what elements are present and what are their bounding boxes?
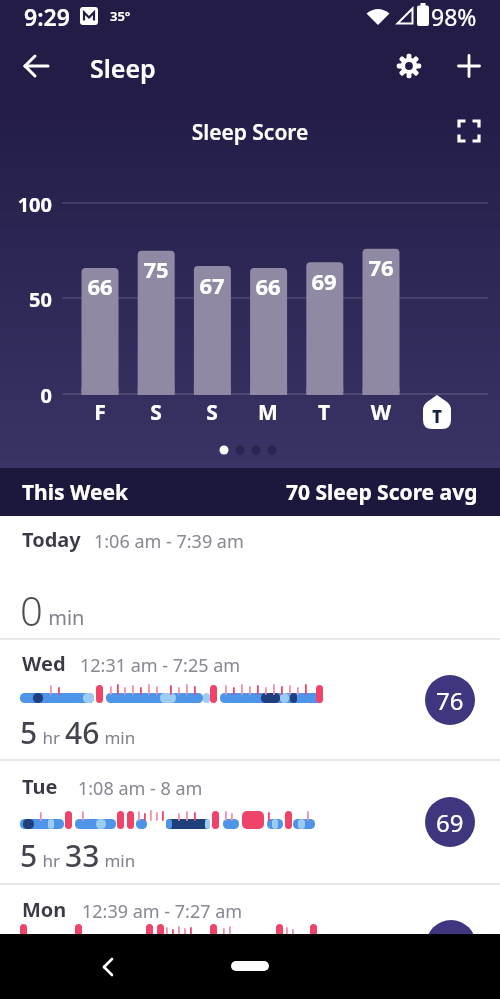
- staticText: 0: [20, 583, 43, 637]
- staticText: S: [194, 398, 230, 427]
- staticText: Sleep Score: [0, 118, 500, 147]
- staticText: 35°: [110, 7, 131, 25]
- staticText: 76: [436, 684, 464, 717]
- staticText: 69: [306, 266, 342, 296]
- staticText: 76: [363, 252, 399, 282]
- staticText: 66: [82, 271, 118, 301]
- staticText: T: [423, 405, 451, 428]
- button[interactable]: [231, 961, 269, 971]
- staticText: 12:31 am - 7:25 am: [80, 653, 241, 678]
- staticText: min: [100, 726, 136, 749]
- staticText: T: [306, 398, 342, 427]
- staticText: Sleep: [90, 51, 156, 85]
- button[interactable]: [0, 885, 500, 934]
- staticText: hr: [38, 726, 65, 749]
- staticText: 100: [0, 191, 52, 218]
- staticText: Mon: [22, 896, 67, 923]
- button[interactable]: [0, 640, 500, 759]
- staticText: min: [43, 604, 85, 631]
- staticText: 46: [65, 712, 100, 753]
- staticText: 5: [20, 835, 38, 876]
- staticText: 33: [65, 835, 100, 876]
- staticText: 0: [0, 382, 52, 409]
- button[interactable]: [0, 761, 500, 883]
- button[interactable]: [458, 55, 480, 77]
- button[interactable]: [98, 956, 120, 978]
- staticText: 12:39 am - 7:27 am: [82, 899, 243, 924]
- staticText: min: [100, 849, 136, 872]
- staticText: W: [363, 398, 399, 427]
- staticText: S: [138, 398, 174, 427]
- staticText: 1:06 am - 7:39 am: [94, 529, 244, 554]
- staticText: F: [82, 398, 118, 427]
- staticText: 50: [0, 286, 52, 313]
- staticText: 9:29: [24, 1, 70, 32]
- button[interactable]: [459, 121, 479, 141]
- staticText: 70 Sleep Score avg: [286, 478, 478, 507]
- staticText: 66: [250, 271, 286, 301]
- staticText: Tue: [22, 773, 58, 800]
- button[interactable]: T: [423, 395, 451, 429]
- button[interactable]: [0, 516, 500, 638]
- staticText: M: [250, 398, 286, 427]
- staticText: 98%: [431, 1, 477, 32]
- staticText: 69: [436, 806, 464, 839]
- staticText: Wed: [22, 650, 66, 677]
- button[interactable]: [22, 51, 52, 81]
- staticText: This Week: [22, 478, 129, 507]
- staticText: 75: [138, 254, 174, 284]
- staticText: Today: [22, 526, 81, 553]
- staticText: 67: [194, 270, 230, 300]
- staticText: 1:08 am - 8 am: [78, 776, 203, 801]
- staticText: 5: [20, 712, 38, 753]
- button[interactable]: [395, 52, 423, 80]
- staticText: hr: [38, 849, 65, 872]
